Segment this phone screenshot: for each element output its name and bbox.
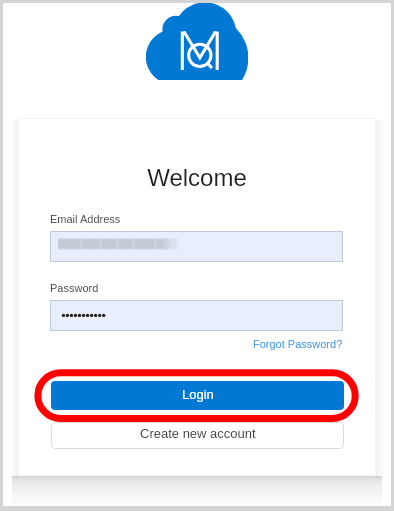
staticText: Create new account — [140, 426, 256, 441]
button[interactable]: Login — [51, 381, 344, 410]
button[interactable] — [50, 300, 343, 331]
button[interactable] — [50, 231, 343, 262]
button[interactable]: Create new account — [51, 422, 344, 449]
staticText: Password — [50, 282, 99, 294]
staticText: Login — [182, 387, 214, 402]
other: App logo — [146, 3, 248, 81]
staticText: Welcome — [18, 164, 376, 191]
staticText: Email Address — [50, 213, 121, 225]
button[interactable]: Forgot Password? — [253, 338, 343, 350]
